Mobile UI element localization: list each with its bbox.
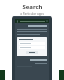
button[interactable] xyxy=(17,37,47,56)
button[interactable] xyxy=(26,51,38,54)
staticText: a Particular apps xyxy=(20,12,44,16)
button[interactable]: Back xyxy=(15,19,49,23)
button[interactable]: Back xyxy=(12,16,52,80)
other: Back xyxy=(16,20,19,23)
staticText: Search xyxy=(22,3,43,11)
